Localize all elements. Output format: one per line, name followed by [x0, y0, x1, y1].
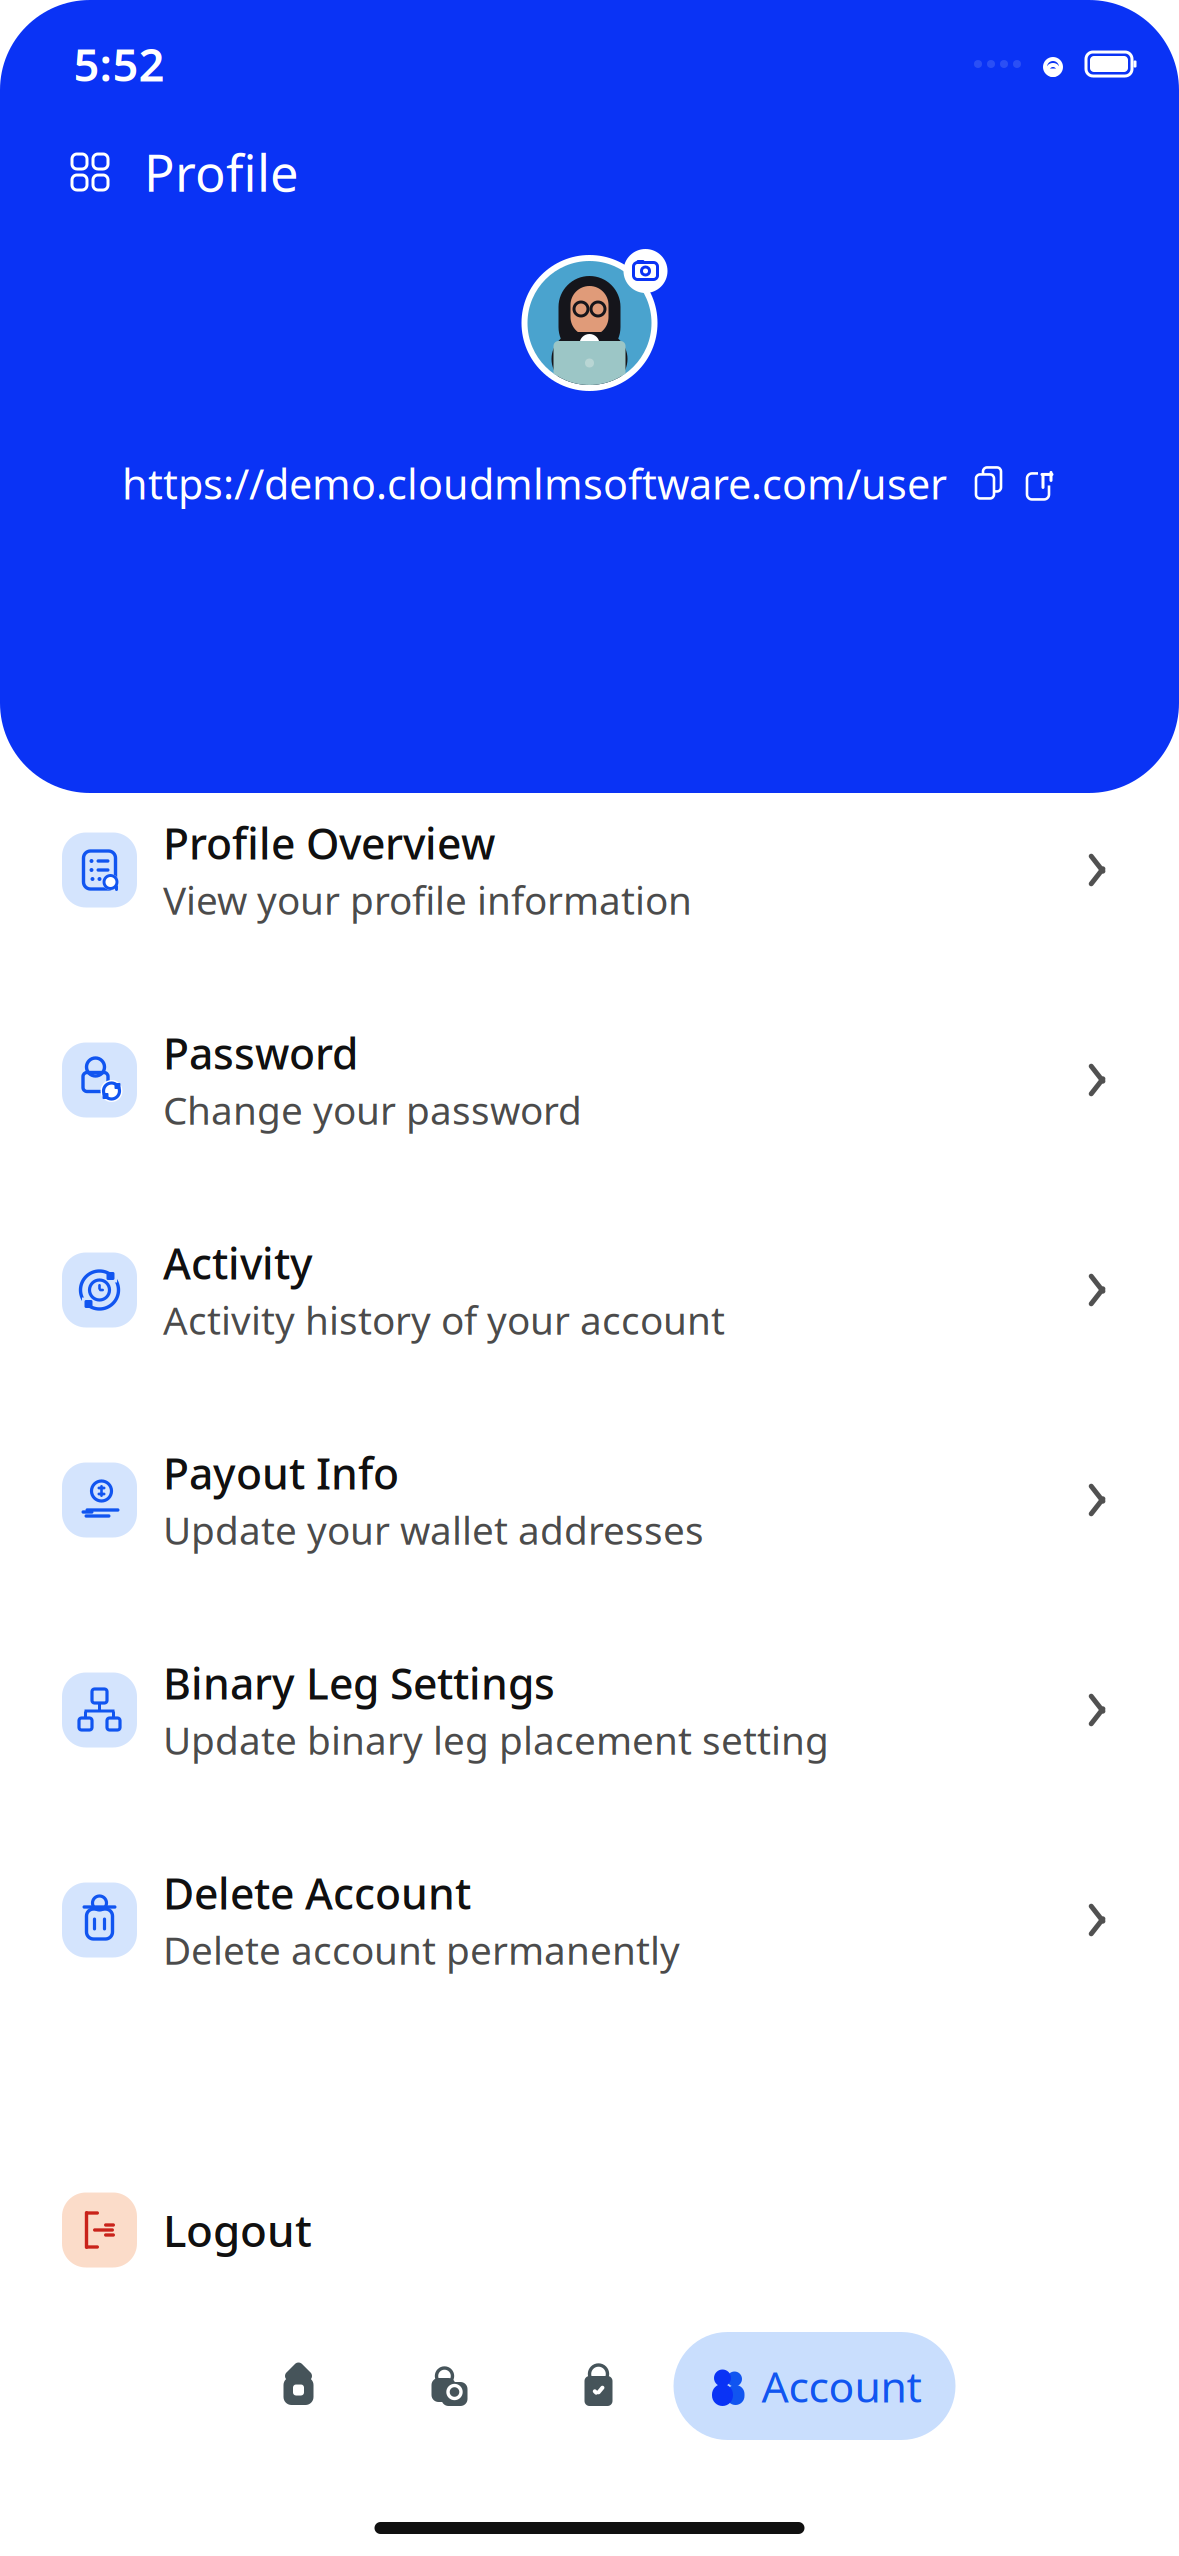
button[interactable]: Delete Account	[0, 1865, 1179, 1975]
staticText: Update binary leg placement setting	[163, 1714, 829, 1765]
button[interactable]: Copy link	[971, 466, 1005, 500]
staticText: Logout	[163, 2201, 312, 2259]
staticText: Activity	[163, 1234, 313, 1291]
staticText: Delete Account	[163, 1864, 471, 1921]
button[interactable]: Password	[0, 1025, 1179, 1135]
button[interactable]: Binary Leg Settings	[0, 1655, 1179, 1765]
staticText: Activity history of your account	[163, 1294, 725, 1345]
staticText: Payout Info	[163, 1444, 399, 1501]
staticText: Password	[163, 1024, 358, 1081]
staticText: Account	[761, 2358, 921, 2414]
button[interactable]: Menu	[0, 134, 1179, 210]
staticText: Profile Overview	[163, 814, 495, 871]
staticText: https://demo.cloudmlmsoftware.com/user	[122, 456, 947, 511]
button[interactable]: Repurchase	[373, 2331, 523, 2441]
staticText: Delete account permanently	[163, 1924, 680, 1975]
button[interactable]: Logout	[0, 2175, 1179, 2285]
button[interactable]: Payout Info	[0, 1445, 1179, 1555]
button[interactable]: Home	[223, 2331, 373, 2441]
staticText: Change your password	[163, 1084, 582, 1135]
button[interactable]: Orders	[523, 2331, 673, 2441]
staticText: Update your wallet addresses	[163, 1504, 704, 1555]
staticText: Binary Leg Settings	[163, 1654, 555, 1711]
staticText: Profile	[144, 138, 299, 206]
staticText: 5:52	[73, 34, 164, 94]
button[interactable]: Profile Overview	[0, 815, 1179, 925]
button[interactable]: Change photo	[623, 249, 667, 293]
button[interactable]: Activity	[0, 1235, 1179, 1345]
staticText: View your profile information	[163, 874, 692, 925]
button[interactable]: Share link	[1023, 466, 1057, 500]
button[interactable]: Account	[673, 2332, 955, 2440]
